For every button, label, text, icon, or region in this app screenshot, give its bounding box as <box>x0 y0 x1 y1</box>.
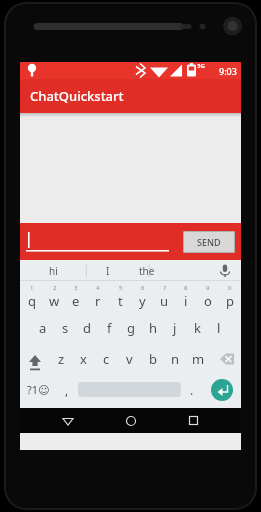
button[interactable]: l <box>208 312 230 343</box>
staticText: 3G <box>197 62 205 70</box>
staticText: r <box>95 292 101 310</box>
button[interactable]: z <box>50 343 72 374</box>
staticText: 7 <box>163 284 167 292</box>
staticText: 0 <box>228 284 232 292</box>
button[interactable]: f <box>98 312 120 343</box>
staticText: . <box>190 382 194 398</box>
button[interactable] <box>26 230 177 254</box>
staticText: z <box>58 350 65 368</box>
button[interactable]: 4 <box>87 281 109 312</box>
staticText: ?1☺ <box>27 382 50 397</box>
button[interactable]: v <box>118 343 141 374</box>
staticText: x <box>80 350 87 368</box>
button[interactable]: 6 <box>131 281 153 312</box>
button[interactable]: Backspace <box>210 343 241 374</box>
staticText: v <box>126 350 133 368</box>
staticText: m <box>192 350 205 368</box>
staticText: 4 <box>96 284 100 292</box>
button[interactable]: , <box>56 374 78 405</box>
staticText: s <box>62 319 69 337</box>
staticText: i <box>184 292 188 310</box>
button[interactable]: Enter <box>203 374 241 405</box>
staticText: j <box>173 319 177 337</box>
button[interactable]: 9 <box>197 281 219 312</box>
button[interactable]: 2 <box>43 281 65 312</box>
button[interactable]: 5 <box>109 281 131 312</box>
button[interactable]: h <box>142 312 164 343</box>
staticText: the <box>139 264 155 278</box>
staticText: 8 <box>184 284 188 292</box>
button[interactable]: Recents <box>178 408 208 433</box>
staticText: p <box>226 292 234 310</box>
staticText: 2 <box>53 284 57 292</box>
button[interactable]: j <box>164 312 186 343</box>
button[interactable]: d <box>76 312 98 343</box>
button[interactable]: Home <box>116 408 146 433</box>
staticText: 9 <box>206 284 210 292</box>
staticText: e <box>72 292 80 310</box>
button[interactable]: g <box>120 312 142 343</box>
button[interactable]: 3 <box>65 281 87 312</box>
staticText: q <box>28 292 36 310</box>
staticText: n <box>171 350 180 368</box>
button[interactable]: 1 <box>20 281 43 312</box>
staticText: ChatQuickstart <box>30 87 124 105</box>
staticText: d <box>83 319 91 337</box>
button[interactable]: x <box>72 343 95 374</box>
button[interactable]: s <box>54 312 76 343</box>
staticText: h <box>149 319 158 337</box>
button[interactable]: 8 <box>175 281 197 312</box>
staticText: , <box>65 382 69 398</box>
button[interactable]: n <box>164 343 187 374</box>
button[interactable]: b <box>141 343 164 374</box>
button[interactable]: 0 <box>219 281 241 312</box>
staticText: l <box>217 319 221 337</box>
button[interactable]: 7 <box>153 281 175 312</box>
staticText: g <box>127 319 135 337</box>
staticText: hi <box>49 264 58 278</box>
staticText: 3 <box>74 284 78 292</box>
button[interactable]: k <box>186 312 208 343</box>
staticText: c <box>103 350 110 368</box>
button[interactable]: ChatQuickstart <box>20 79 241 113</box>
staticText: 5 <box>119 284 123 292</box>
staticText: 9:03 <box>219 65 237 77</box>
button[interactable]: c <box>95 343 118 374</box>
staticText: b <box>149 350 157 368</box>
staticText: t <box>118 292 123 310</box>
button[interactable]: a <box>32 312 54 343</box>
button[interactable]: m <box>187 343 210 374</box>
button[interactable]: SEND <box>183 231 235 253</box>
staticText: a <box>39 319 47 337</box>
staticText: u <box>160 292 169 310</box>
button[interactable]: ?1☺ <box>20 374 56 405</box>
staticText: o <box>204 292 212 310</box>
staticText: f <box>107 319 112 337</box>
staticText: 1 <box>30 284 34 292</box>
button[interactable]: hi <box>20 260 86 281</box>
staticText: w <box>49 292 60 310</box>
button[interactable]: Space <box>78 374 181 405</box>
button[interactable]: Back <box>53 408 83 433</box>
staticText: I <box>106 264 110 278</box>
button[interactable]: I <box>86 260 130 281</box>
button[interactable]: the <box>130 260 163 281</box>
staticText: 6 <box>141 284 145 292</box>
staticText: k <box>194 319 201 337</box>
staticText: y <box>139 292 146 310</box>
button[interactable]: . <box>181 374 203 405</box>
button[interactable]: Shift <box>20 343 50 374</box>
staticText: SEND <box>197 236 221 248</box>
